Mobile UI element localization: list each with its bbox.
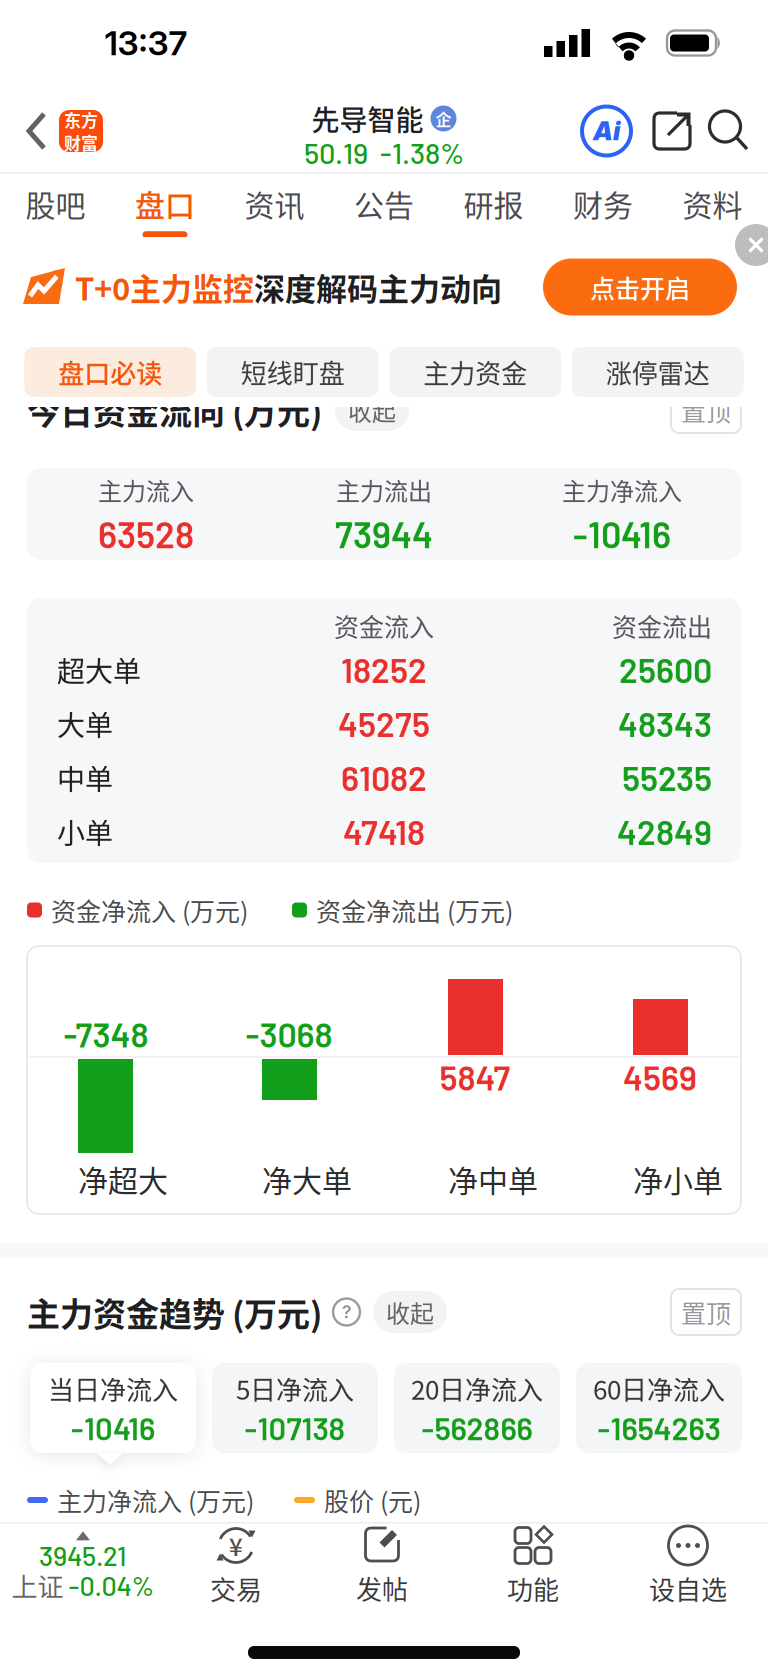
staticText: 资料 (682, 182, 742, 225)
button[interactable]: 置顶 (671, 387, 768, 433)
button[interactable]: 股吧 (1, 182, 110, 238)
button[interactable]: 5日净流入 (212, 1363, 378, 1453)
button[interactable]: 盘口必读 (24, 347, 196, 397)
staticText: -10416 (71, 1409, 155, 1446)
staticText: 5日净流入 (236, 1370, 354, 1407)
button[interactable]: 关闭 (363, 266, 405, 308)
staticText: 收起 (348, 393, 396, 427)
staticText: 置顶 (681, 1294, 731, 1330)
staticText: 主力净流入 (万元) (57, 1482, 254, 1518)
staticText: T+0主力监控 (75, 265, 254, 309)
staticText: -562866 (421, 1409, 532, 1446)
staticText: 主力净流入 (562, 472, 682, 507)
staticText: 净大单 (262, 1157, 352, 1201)
staticText: 先导智能 (311, 98, 423, 139)
staticText: 3945.21 (39, 1539, 127, 1571)
staticText: 5847 (439, 1057, 510, 1097)
button[interactable]: 返回 (0, 112, 59, 150)
staticText: -0.04% (68, 1569, 154, 1601)
button[interactable]: 60日净流入 (576, 1363, 742, 1453)
staticText: 财富 (64, 130, 98, 155)
button[interactable]: 公告 (329, 182, 439, 238)
button[interactable]: 搜索 (692, 110, 768, 152)
staticText: 55235 (622, 757, 712, 798)
staticText: 净小单 (633, 1157, 723, 1201)
staticText: 涨停雷达 (606, 353, 710, 391)
button[interactable]: Ai 助手 (582, 106, 631, 155)
staticText: 功能 (507, 1569, 559, 1607)
staticText: 资金流出 (612, 607, 712, 644)
staticText: 东方 (64, 107, 98, 132)
button[interactable]: 功能 (458, 1524, 608, 1607)
staticText: 45275 (338, 703, 430, 744)
button[interactable]: 研报 (439, 182, 548, 238)
staticText: 超大单 (57, 649, 141, 690)
staticText: 研报 (463, 182, 523, 225)
button[interactable]: 盘口 (110, 182, 220, 238)
button[interactable]: 收起 (322, 389, 409, 431)
staticText: 盘口 (135, 182, 195, 225)
staticText: 13:37 (104, 22, 187, 63)
staticText: 上证 (11, 1566, 63, 1604)
staticText: -7348 (63, 1014, 148, 1054)
staticText: 短线盯盘 (241, 353, 345, 391)
staticText: 净超大 (78, 1157, 168, 1201)
staticText: 当日净流入 (48, 1370, 178, 1407)
staticText: 主力流出 (336, 472, 432, 507)
button[interactable]: 3945.21 (0, 1531, 166, 1600)
staticText: 置顶 (681, 392, 731, 428)
staticText: 47418 (343, 811, 425, 852)
button[interactable]: 涨停雷达 (572, 347, 744, 397)
button[interactable]: 当日净流入 (30, 1363, 196, 1453)
staticText: 资金净流入 (万元) (51, 892, 248, 928)
button[interactable]: 财务 (548, 182, 658, 238)
staticText: 61082 (341, 757, 427, 798)
staticText: -1.38% (380, 135, 464, 170)
staticText: 股吧 (25, 182, 85, 225)
staticText: 18252 (341, 649, 427, 690)
staticText: 主力流入 (98, 472, 194, 507)
staticText: 盘口必读 (58, 353, 162, 391)
staticText: 企 (435, 107, 451, 130)
staticText: 42849 (617, 811, 712, 852)
staticText: 小单 (57, 811, 113, 852)
staticText: 交易 (210, 1569, 262, 1607)
staticText: -1654263 (597, 1409, 720, 1446)
staticText: 25600 (619, 649, 712, 690)
staticText: ? (342, 1301, 351, 1322)
staticText: 今日资金流向 (万元) (27, 386, 322, 434)
button[interactable]: 20日净流入 (394, 1363, 560, 1453)
button[interactable]: 设自选 (608, 1524, 768, 1607)
staticText: 50.19 (304, 135, 368, 170)
button[interactable]: 收起 (360, 1291, 447, 1333)
staticText: 点击开启 (590, 269, 690, 305)
staticText: 73944 (335, 512, 433, 555)
button[interactable]: 资讯 (220, 182, 329, 238)
button[interactable]: 东方财富 (59, 107, 103, 155)
staticText: 60日净流入 (593, 1370, 725, 1407)
button[interactable]: 发帖 (306, 1525, 458, 1607)
staticText: 资金流入 (334, 607, 434, 644)
button[interactable]: ¥ (166, 1524, 306, 1607)
staticText: Ai (593, 116, 620, 146)
staticText: 4569 (623, 1057, 697, 1097)
button[interactable]: 帮助 (322, 1298, 360, 1325)
staticText: 大单 (57, 703, 113, 744)
button[interactable]: 置顶 (671, 1289, 768, 1335)
button[interactable]: 点击开启 (543, 258, 768, 315)
staticText: 中单 (57, 757, 113, 798)
staticText: 深度解码主力动向 (254, 265, 502, 309)
staticText: 资金净流出 (万元) (316, 892, 513, 928)
staticText: 收起 (386, 1295, 434, 1329)
staticText: 63528 (98, 512, 194, 555)
button[interactable]: 分享 (631, 111, 692, 151)
button[interactable]: 资料 (658, 182, 767, 238)
button[interactable]: 主力资金 (389, 347, 561, 397)
staticText: 48343 (618, 703, 712, 744)
staticText: 资讯 (244, 182, 304, 225)
staticText: 主力资金 (423, 353, 527, 391)
staticText: 主力资金趋势 (万元) (27, 1288, 322, 1336)
staticText: 20日净流入 (411, 1370, 543, 1407)
staticText: 股价 (元) (324, 1482, 421, 1518)
button[interactable]: 短线盯盘 (207, 347, 379, 397)
